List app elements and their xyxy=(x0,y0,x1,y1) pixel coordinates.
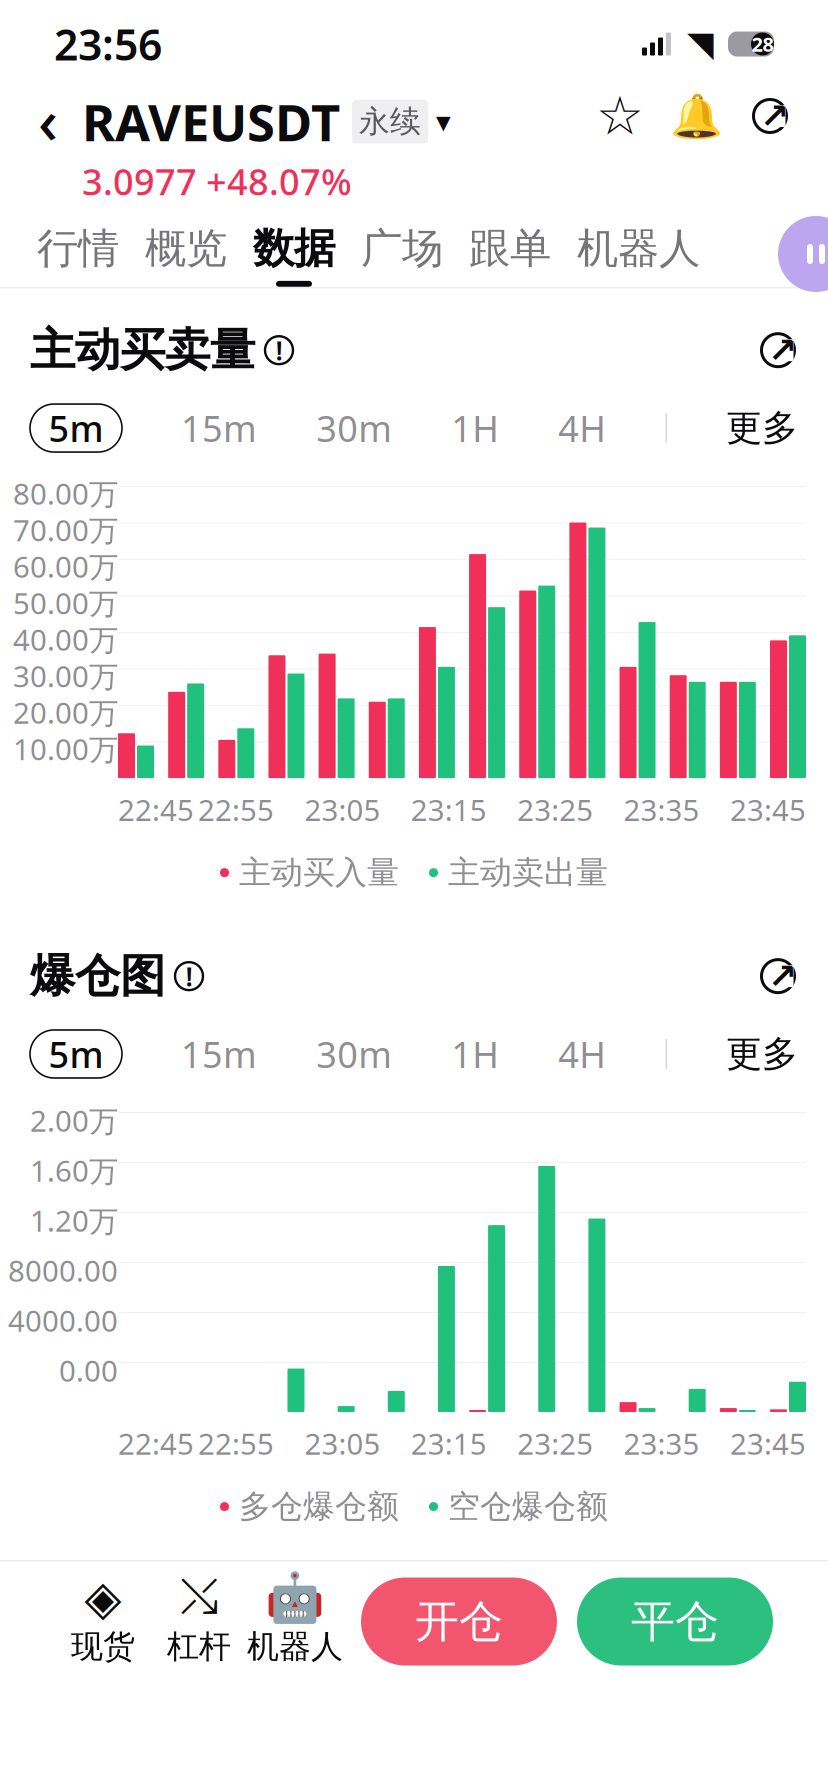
staticText: 多仓爆仓额 xyxy=(239,1487,399,1526)
staticText: 4H xyxy=(558,1030,606,1078)
staticText: ⤯ xyxy=(180,1574,218,1621)
staticText: ↗ xyxy=(760,96,789,136)
button[interactable]: 更多 xyxy=(726,1032,798,1076)
button[interactable]: 4H xyxy=(558,1030,606,1078)
staticText: 23:56 xyxy=(54,16,162,72)
button[interactable]: Back xyxy=(38,88,82,152)
button[interactable]: 15m xyxy=(181,404,257,452)
staticText: 30.00万 xyxy=(13,656,118,695)
staticText: 23:35 xyxy=(624,790,700,829)
button[interactable]: 永续 xyxy=(352,100,451,143)
staticText: 23:05 xyxy=(304,790,380,829)
staticText: 3.0977 +48.07% xyxy=(82,157,352,205)
staticText: 杠杆 xyxy=(167,1627,231,1666)
staticText: 1H xyxy=(451,1030,499,1078)
button[interactable]: 15m xyxy=(181,1030,257,1078)
staticText: 23:05 xyxy=(304,1424,380,1463)
staticText: 空仓爆仓额 xyxy=(448,1487,608,1526)
staticText: 20.00万 xyxy=(13,693,118,732)
button[interactable]: 1H xyxy=(451,404,499,452)
button[interactable]: 5m xyxy=(30,404,122,452)
staticText: 平仓 xyxy=(631,1594,719,1648)
staticText: 5m xyxy=(48,404,103,452)
staticText: 1.60万 xyxy=(30,1151,118,1190)
staticText: 30m xyxy=(316,1030,392,1078)
button[interactable]: 🤖 xyxy=(247,1577,343,1666)
staticText: ! xyxy=(275,332,282,368)
staticText: 28 xyxy=(751,31,773,57)
staticText: ! xyxy=(185,958,192,994)
staticText: 15m xyxy=(181,1030,257,1078)
button[interactable]: Share xyxy=(750,96,790,136)
button[interactable]: 30m xyxy=(316,1030,392,1078)
staticText: 22:45 xyxy=(118,1424,194,1463)
staticText: 8000.00 xyxy=(8,1251,118,1290)
button[interactable]: 概览 xyxy=(132,223,240,287)
button[interactable]: 跟单 xyxy=(456,223,564,287)
staticText: 4000.00 xyxy=(8,1301,118,1340)
staticText: 30m xyxy=(316,404,392,452)
staticText: 23:15 xyxy=(411,1424,487,1463)
staticText: 0.00 xyxy=(59,1351,118,1390)
staticText: 15m xyxy=(181,404,257,452)
staticText: 23:15 xyxy=(411,790,487,829)
staticText: 主动卖出量 xyxy=(448,853,608,892)
button[interactable]: 机器人 xyxy=(564,223,713,287)
staticText: 广场 xyxy=(361,223,443,274)
button[interactable]: 平仓 xyxy=(577,1577,773,1665)
staticText: RAVEUSDT xyxy=(82,88,340,155)
button[interactable]: 数据 xyxy=(240,223,348,287)
button[interactable]: 更多 xyxy=(726,406,798,450)
staticText: 2.00万 xyxy=(30,1101,118,1140)
button[interactable]: Share xyxy=(758,956,798,996)
staticText: 22:55 xyxy=(198,790,274,829)
staticText: 主动买入量 xyxy=(239,853,399,892)
staticText: ‹ xyxy=(38,79,58,161)
staticText: 50.00万 xyxy=(13,583,118,622)
staticText: 机器人 xyxy=(247,1627,343,1666)
staticText: ↗ xyxy=(768,956,797,996)
staticText: 跟单 xyxy=(469,223,551,274)
button[interactable]: Alerts xyxy=(676,92,716,140)
button[interactable]: 1H xyxy=(451,1030,499,1078)
button[interactable]: 30m xyxy=(316,404,392,452)
staticText: ↗ xyxy=(768,330,797,370)
button[interactable]: Assistant xyxy=(778,216,828,292)
button[interactable]: Favorite xyxy=(598,92,642,140)
button[interactable]: Share xyxy=(758,330,798,370)
staticText: 4H xyxy=(558,404,606,452)
staticText: 数据 xyxy=(253,223,335,274)
staticText: 70.00万 xyxy=(13,510,118,549)
staticText: 更多 xyxy=(726,406,798,450)
staticText: 23:45 xyxy=(730,790,806,829)
button[interactable]: 行情 xyxy=(24,223,132,287)
staticText: 更多 xyxy=(726,1032,798,1076)
staticText: 爆仓图 xyxy=(30,948,165,1004)
staticText: ☆ xyxy=(596,86,644,146)
staticText: 40.00万 xyxy=(13,620,118,659)
staticText: 机器人 xyxy=(577,223,700,274)
button[interactable]: ◈ xyxy=(55,1577,151,1666)
staticText: 永续 xyxy=(359,103,421,140)
staticText: 23:35 xyxy=(624,1424,700,1463)
staticText: 23:45 xyxy=(730,1424,806,1463)
staticText: 23:25 xyxy=(517,1424,593,1463)
staticText: 1H xyxy=(451,404,499,452)
staticText: 60.00万 xyxy=(13,547,118,586)
staticText: 行情 xyxy=(37,223,119,274)
button[interactable]: 4H xyxy=(558,404,606,452)
staticText: 概览 xyxy=(145,223,227,274)
button[interactable]: 5m xyxy=(30,1030,122,1078)
staticText: ◥ xyxy=(687,24,714,64)
button[interactable]: ⤯ xyxy=(151,1577,247,1666)
staticText: 主动买卖量 xyxy=(30,322,255,378)
staticText: 80.00万 xyxy=(13,474,118,513)
button[interactable]: 开仓 xyxy=(361,1577,557,1665)
staticText: 🤖 xyxy=(265,1570,325,1625)
button[interactable]: 广场 xyxy=(348,223,456,287)
staticText: 1.20万 xyxy=(30,1201,118,1240)
staticText: 23:25 xyxy=(517,790,593,829)
staticText: ◈ xyxy=(84,1571,121,1625)
staticText: 开仓 xyxy=(415,1594,503,1648)
staticText: ▾ xyxy=(436,105,451,138)
